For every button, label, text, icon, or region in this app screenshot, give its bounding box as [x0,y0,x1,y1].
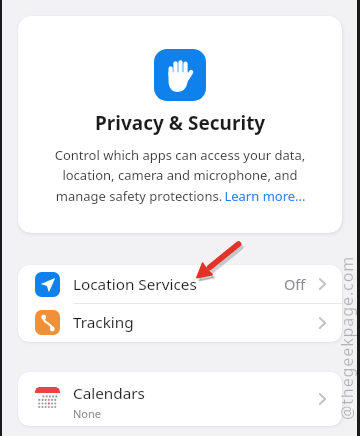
other: Calendars icon [35,387,60,412]
button[interactable]: Calendars icon [18,372,342,426]
button[interactable]: Learn more... [224,187,306,205]
other: Tracking icon [35,310,60,335]
staticText: Privacy & Security [95,110,266,136]
staticText: @thegeekpage.com [336,238,358,436]
staticText: Control which apps can access your data,… [18,146,342,184]
other: Location Services icon [35,272,60,297]
staticText: Calendars [73,383,145,404]
staticText: manage safety protections. [54,187,224,205]
other: Privacy and Security [154,49,206,101]
button[interactable]: Tracking icon [18,303,342,342]
staticText: Off [284,274,306,294]
staticText: None [73,406,102,421]
staticText: Learn more... [224,187,306,205]
button[interactable]: Location Services icon [18,265,342,303]
staticText: Location Services [73,274,197,295]
staticText: Tracking [73,312,134,333]
